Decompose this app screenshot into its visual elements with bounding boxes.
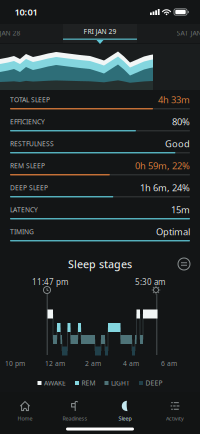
- staticText: 80%: [172, 115, 190, 128]
- staticText: AWAKE: [44, 379, 66, 387]
- staticText: TIMING: [10, 227, 34, 236]
- staticText: Optimal: [156, 225, 190, 238]
- staticText: EFFICIENCY: [10, 117, 45, 126]
- staticText: 2 am: [85, 359, 101, 368]
- staticText: Sleep stages: [68, 257, 132, 271]
- button[interactable]: Next day: [174, 23, 200, 42]
- staticText: 10 pm: [5, 359, 25, 368]
- staticText: 10:01: [14, 6, 37, 18]
- staticText: Sleep: [118, 415, 131, 422]
- staticText: Home: [17, 415, 32, 422]
- staticText: LATENCY: [10, 205, 38, 214]
- staticText: TOTAL SLEEP: [10, 95, 50, 104]
- button[interactable]: Readiness: [50, 396, 100, 426]
- staticText: 15m: [171, 203, 190, 216]
- staticText: 0h 59m, 22%: [135, 159, 190, 172]
- staticText: 4h 33m: [158, 93, 190, 106]
- staticText: 4 am: [123, 359, 139, 368]
- staticText: JAN 28: [0, 29, 20, 37]
- button[interactable]: Sleep stage options: [176, 256, 191, 271]
- staticText: LIGHT: [111, 379, 130, 387]
- button[interactable]: FRI JAN 29: [65, 22, 135, 41]
- staticText: 11:47 pm: [32, 277, 68, 287]
- staticText: REM: [81, 379, 95, 387]
- staticText: DEEP: [145, 379, 162, 387]
- button[interactable]: Home: [0, 396, 50, 426]
- button[interactable]: Previous day: [0, 23, 28, 42]
- button[interactable]: Sleep: [100, 396, 150, 426]
- staticText: FRI JAN 29: [83, 27, 116, 36]
- staticText: Activity: [166, 415, 184, 422]
- staticText: DEEP SLEEP: [10, 183, 48, 192]
- staticText: RESTFULNESS: [10, 139, 54, 148]
- staticText: 1h 6m, 24%: [140, 181, 190, 194]
- staticText: SAT JAN 3: [176, 29, 200, 37]
- staticText: Good: [165, 137, 190, 150]
- staticText: 12 am: [45, 359, 65, 368]
- button[interactable]: Activity: [150, 396, 200, 426]
- staticText: Readiness: [62, 415, 87, 422]
- staticText: 5:30 am: [135, 277, 165, 287]
- staticText: REM SLEEP: [10, 161, 45, 170]
- staticText: 6 am: [161, 359, 177, 368]
